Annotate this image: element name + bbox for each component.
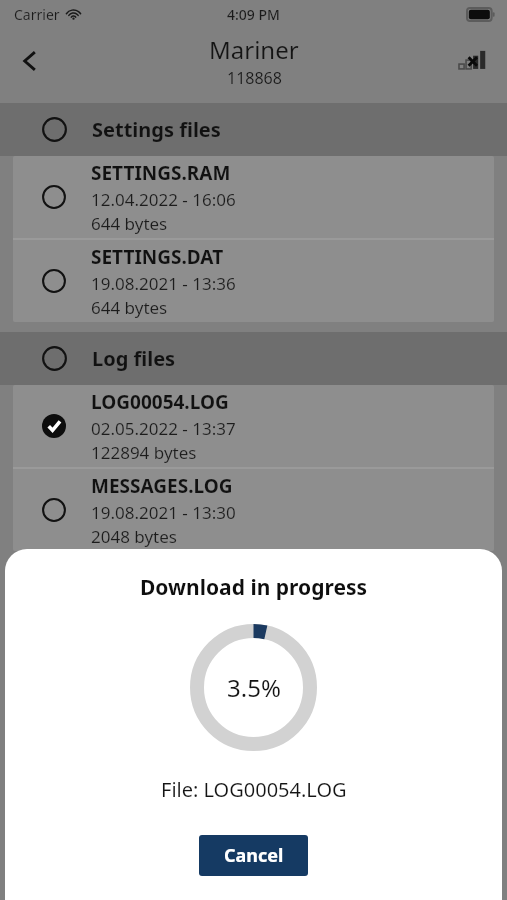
button[interactable]: LOG00054.LOG: [13, 385, 494, 467]
button[interactable]: SETTINGS.RAM: [13, 156, 494, 238]
button[interactable]: Settings files: [0, 103, 507, 156]
staticText: 19.08.2021 - 13:30: [91, 501, 236, 524]
staticText: Download in progress: [140, 573, 368, 602]
button[interactable]: Log files: [0, 332, 507, 385]
staticText: 122894 bytes: [91, 441, 197, 464]
button[interactable]: Cancel: [199, 835, 308, 876]
staticText: Settings files: [92, 116, 221, 143]
staticText: File: LOG00054.LOG: [161, 776, 347, 803]
staticText: 644 bytes: [91, 296, 168, 319]
staticText: 3.5%: [227, 671, 281, 704]
staticText: 2048 bytes: [91, 525, 177, 548]
button[interactable]: SETTINGS.DAT: [13, 240, 494, 322]
button[interactable]: MESSAGES.LOG: [13, 469, 494, 551]
staticText: 19.08.2021 - 13:36: [91, 272, 236, 295]
staticText: 12.04.2022 - 16:06: [91, 188, 236, 211]
staticText: Log files: [92, 345, 176, 372]
staticText: Cancel: [224, 843, 284, 868]
staticText: SETTINGS.DAT: [91, 244, 224, 270]
staticText: 644 bytes: [91, 212, 168, 235]
staticText: Mariner: [209, 33, 299, 66]
staticText: Carrier: [14, 5, 60, 24]
staticText: SETTINGS.RAM: [91, 160, 231, 186]
staticText: LOG00054.LOG: [91, 389, 229, 415]
staticText: 4:09 PM: [227, 5, 280, 24]
staticText: 118868: [227, 67, 282, 89]
button[interactable]: Back: [6, 37, 54, 85]
staticText: MESSAGES.LOG: [91, 473, 233, 499]
staticText: 02.05.2022 - 13:37: [91, 417, 236, 440]
button[interactable]: No signal: [451, 38, 497, 84]
